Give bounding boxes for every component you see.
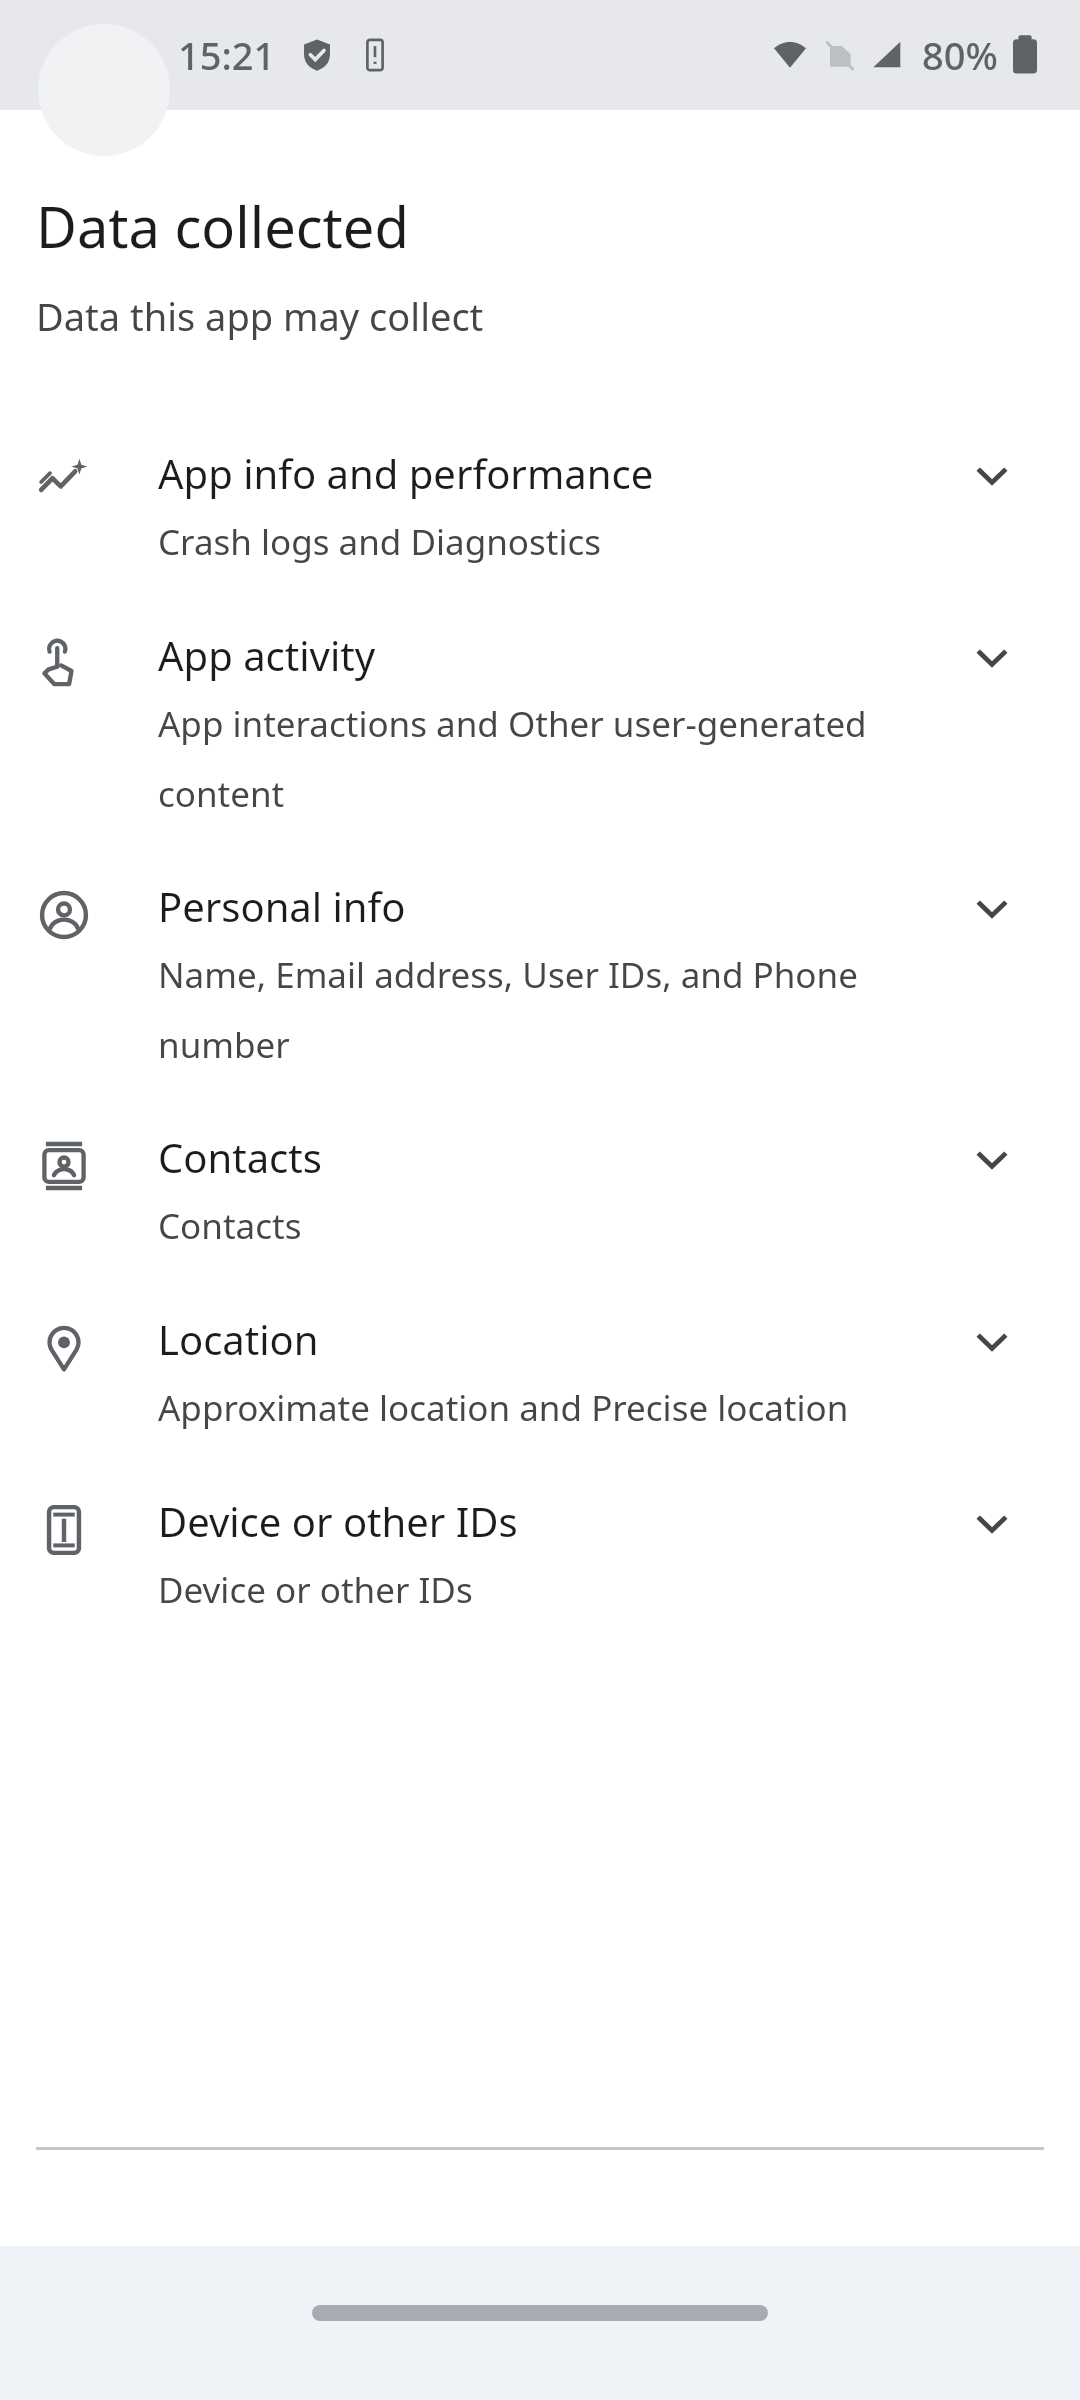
other: App info and performance <box>36 454 92 510</box>
other: Personal info <box>36 887 92 943</box>
staticText: Approximate location and Precise locatio… <box>158 1384 849 1432</box>
other: Device or other IDs <box>36 1502 92 1558</box>
staticText: App activity <box>158 628 376 682</box>
button[interactable]: App info and performance <box>0 342 1080 566</box>
staticText: Device or other IDs <box>158 1494 518 1548</box>
other: Location <box>36 1320 92 1376</box>
staticText: Contacts <box>158 1130 322 1184</box>
button[interactable]: Device or other IDs <box>0 1432 1080 1614</box>
staticText: Location <box>158 1312 319 1366</box>
staticText: Crash logs and Diagnostics <box>158 518 602 566</box>
staticText: App interactions and Other user-generate… <box>158 700 940 817</box>
staticText: Device or other IDs <box>158 1566 473 1614</box>
button[interactable]: App activity <box>0 566 1080 817</box>
staticText: 80% <box>922 29 998 81</box>
other: Contacts <box>36 1138 92 1194</box>
staticText: Personal info <box>158 879 406 933</box>
button[interactable]: Contacts <box>0 1068 1080 1250</box>
button[interactable]: Location <box>0 1250 1080 1432</box>
staticText: Data this app may collect <box>36 290 484 342</box>
staticText: 15:21 <box>178 29 276 81</box>
staticText: Contacts <box>158 1202 302 1250</box>
other: App activity <box>36 636 92 692</box>
staticText: Name, Email address, User IDs, and Phone… <box>158 951 940 1068</box>
button[interactable]: Personal info <box>0 817 1080 1068</box>
staticText: Data collected <box>36 188 409 264</box>
staticText: App info and performance <box>158 446 654 500</box>
